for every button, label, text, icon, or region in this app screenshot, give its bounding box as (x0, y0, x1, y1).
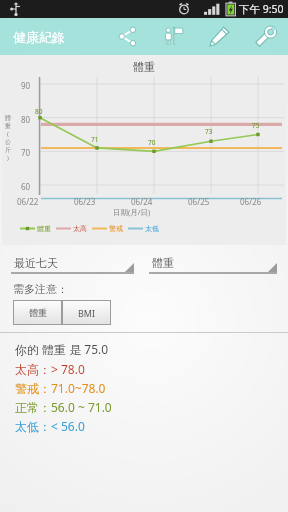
staticText: 正常：56.0 ~ 71.0 (15, 399, 112, 415)
staticText: 06/24 (131, 196, 153, 207)
button[interactable]: Share (104, 18, 150, 55)
button[interactable]: 體重 (13, 300, 62, 325)
staticText: 警戒 (109, 224, 123, 233)
staticText: 太低 (145, 224, 159, 233)
staticText: 06/22 (17, 196, 39, 207)
staticText: 需多注意： (13, 282, 68, 296)
staticText: 80 (21, 114, 31, 125)
button[interactable]: BMI (62, 300, 111, 325)
staticText: 71 (91, 135, 99, 144)
button[interactable]: 最近七天 (11, 254, 134, 274)
staticText: 06/25 (188, 196, 210, 207)
staticText: 斤 (5, 146, 11, 154)
button[interactable]: Edit (196, 18, 242, 55)
staticText: 太高 (73, 224, 87, 233)
staticText: ( (7, 130, 9, 138)
staticText: 75 (252, 121, 260, 130)
staticText: 重 (5, 122, 11, 130)
staticText: 公 (5, 138, 11, 146)
staticText: 日期(月/日) (113, 207, 151, 217)
staticText: 警戒：71.0~78.0 (15, 380, 106, 396)
staticText: 最近七天 (14, 256, 58, 270)
staticText: 06/23 (74, 196, 96, 207)
staticText: ) (7, 154, 9, 162)
staticText: 健康紀錄 (13, 29, 65, 45)
staticText: 06/26 (240, 196, 262, 207)
staticText: 90 (21, 80, 31, 91)
staticText: 太高：> 78.0 (15, 361, 85, 377)
staticText: 70 (21, 147, 31, 158)
staticText: 你的 體重 是 75.0 (15, 341, 109, 357)
staticText: 體重 (152, 256, 174, 270)
button[interactable]: Settings (242, 18, 288, 55)
staticText: 60 (21, 181, 31, 192)
staticText: BMI (78, 307, 96, 319)
staticText: 70 (148, 138, 156, 147)
staticText: 73 (205, 127, 213, 136)
button[interactable]: 體重 (149, 254, 277, 274)
staticText: 體重 (133, 60, 155, 74)
staticText: 體重 (37, 224, 51, 233)
staticText: 太低：< 56.0 (15, 418, 85, 434)
button[interactable]: Goal (150, 18, 196, 55)
staticText: 體 (5, 114, 11, 122)
staticText: 下午 9:50 (239, 2, 284, 16)
staticText: 體重 (29, 307, 47, 318)
staticText: 80 (35, 107, 43, 116)
